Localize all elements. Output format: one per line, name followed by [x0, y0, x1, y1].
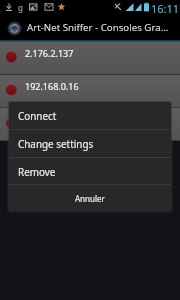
button[interactable]: App icon, navigate up [7, 21, 22, 36]
staticText: Annuler [75, 193, 105, 204]
staticText: Connect [18, 109, 57, 122]
button[interactable]: 2.176.2.137 [0, 42, 180, 74]
staticText: Change settings [18, 137, 94, 150]
button[interactable]: Connect [9, 102, 171, 129]
staticText: Remove [18, 165, 56, 178]
button[interactable]: 10.0.0.42 [0, 108, 180, 140]
staticText: 2.176.2.137 [25, 47, 74, 59]
button[interactable]: Annuler [9, 185, 171, 211]
staticText: g [18, 2, 23, 13]
staticText: 10.0.0.42 [25, 113, 64, 125]
button[interactable]: 192.168.0.16 [0, 75, 180, 107]
staticText: 192.168.0.16 [25, 80, 79, 92]
staticText: 16:11 [151, 1, 180, 16]
button[interactable]: Change settings [9, 130, 171, 157]
button[interactable]: Remove [9, 158, 171, 184]
staticText: Art-Net Sniffer - Consoles Gra... [27, 21, 169, 34]
